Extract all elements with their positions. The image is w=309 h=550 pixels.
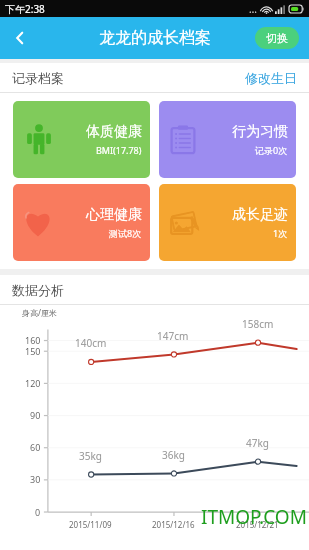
staticText: 150 [25,345,41,357]
staticText: 1次 [273,227,288,239]
staticText: 成长足迹 [232,206,288,224]
staticText: 修改生日 [245,70,297,86]
staticText: 切换 [266,31,288,45]
staticText: 体质健康 [86,123,142,141]
staticText: 龙龙的成长档案 [99,28,211,48]
staticText: 下午2:38 [5,2,45,16]
staticText: 30 [30,473,41,485]
staticText: 120 [25,377,41,389]
staticText: BMI(17.78) [96,144,142,156]
button[interactable]: 行为习惯 [159,101,296,178]
staticText: 0 [35,506,41,518]
staticText: 身高/厘米 [22,307,57,318]
staticText: 2015/12/21 [236,519,279,530]
staticText: 行为习惯 [232,123,288,141]
button[interactable]: 成长足迹 [159,184,296,261]
staticText: 147cm [157,329,189,343]
button[interactable]: 体质健康 [13,101,150,178]
staticText: … [249,2,257,16]
staticText: 47kg [246,436,269,450]
button[interactable]: 切换 [255,27,299,49]
staticText: 35kg [79,449,102,463]
staticText: 2015/11/09 [69,519,112,530]
staticText: 记录0次 [255,144,288,156]
staticText: 测试8次 [109,227,142,239]
staticText: 158cm [242,317,274,331]
staticText: 心理健康 [86,206,142,224]
staticText: 60 [30,441,41,453]
staticText: 160 [25,334,41,346]
staticText: ITMOP.COM [201,504,307,530]
button[interactable]: 心理健康 [13,184,150,261]
staticText: 90 [30,409,41,421]
staticText: 数据分析 [12,282,64,298]
staticText: 记录档案 [12,70,64,86]
button[interactable]: 修改生日 [233,63,309,93]
staticText: 140cm [75,336,107,350]
button[interactable]: Back [0,18,40,58]
staticText: 36kg [162,448,185,462]
staticText: 2015/12/16 [152,519,195,530]
